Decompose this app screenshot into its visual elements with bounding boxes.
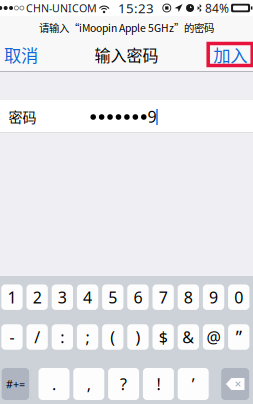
button[interactable]: .: [38, 368, 69, 400]
staticText: &: [182, 326, 194, 348]
button[interactable]: :: [52, 324, 73, 350]
button[interactable]: ”: [228, 324, 249, 350]
staticText: ”: [236, 325, 242, 348]
staticText: /: [34, 326, 40, 348]
staticText: ): [135, 326, 140, 348]
button[interactable]: 4: [77, 284, 98, 310]
staticText: 6: [133, 287, 142, 308]
button[interactable]: 取消: [0, 40, 46, 68]
staticText: 输入密码: [94, 43, 158, 66]
staticText: 密码: [8, 106, 36, 127]
staticText: :: [60, 326, 64, 348]
staticText: 1: [7, 287, 16, 308]
button[interactable]: 7: [152, 284, 174, 310]
staticText: ,: [87, 373, 91, 395]
staticText: 15:23: [118, 0, 154, 17]
button[interactable]: ): [127, 324, 149, 350]
staticText: 4: [83, 287, 92, 308]
staticText: 加入: [213, 42, 247, 67]
staticText: ’: [192, 373, 195, 395]
staticText: 0: [234, 287, 243, 308]
button[interactable]: &: [178, 324, 199, 350]
staticText: 7: [159, 287, 168, 308]
staticText: .: [52, 373, 56, 395]
button[interactable]: @: [203, 324, 224, 350]
button[interactable]: 加入: [208, 43, 252, 65]
staticText: 8: [184, 287, 193, 308]
button[interactable]: 9: [203, 284, 224, 310]
button[interactable]: /: [26, 324, 48, 350]
staticText: !: [156, 373, 160, 395]
button[interactable]: 2: [26, 284, 48, 310]
button[interactable]: 0: [228, 284, 249, 310]
staticText: 取消: [4, 42, 38, 67]
button[interactable]: ’: [178, 368, 209, 400]
staticText: #+=: [6, 377, 25, 391]
staticText: ?: [120, 373, 127, 395]
staticText: @: [207, 326, 221, 348]
button[interactable]: $: [152, 324, 174, 350]
staticText: 请输入“iMoopin Apple 5GHz”的密码: [39, 20, 214, 35]
button[interactable]: ;: [77, 324, 98, 350]
button[interactable]: ?: [108, 368, 139, 400]
button[interactable]: (: [102, 324, 123, 350]
staticText: -: [9, 326, 14, 348]
staticText: CHN-UNICOM: [26, 1, 97, 15]
staticText: 9: [147, 106, 156, 127]
staticText: (: [110, 326, 115, 348]
button[interactable]: -: [1, 324, 23, 350]
button[interactable]: !: [143, 368, 174, 400]
staticText: 9: [209, 287, 218, 308]
staticText: 84%: [205, 0, 229, 16]
button[interactable]: 3: [52, 284, 73, 310]
staticText: ;: [85, 326, 89, 348]
staticText: 3: [58, 287, 67, 308]
button[interactable]: 5: [102, 284, 123, 310]
button[interactable]: 1: [1, 284, 23, 310]
button[interactable]: 6: [127, 284, 149, 310]
staticText: 2: [33, 287, 42, 308]
button[interactable]: 8: [178, 284, 199, 310]
button[interactable]: #+=: [2, 368, 29, 400]
staticText: $: [159, 326, 168, 348]
staticText: 5: [108, 287, 117, 308]
button[interactable]: ,: [73, 368, 104, 400]
button[interactable]: Delete: [221, 368, 249, 400]
